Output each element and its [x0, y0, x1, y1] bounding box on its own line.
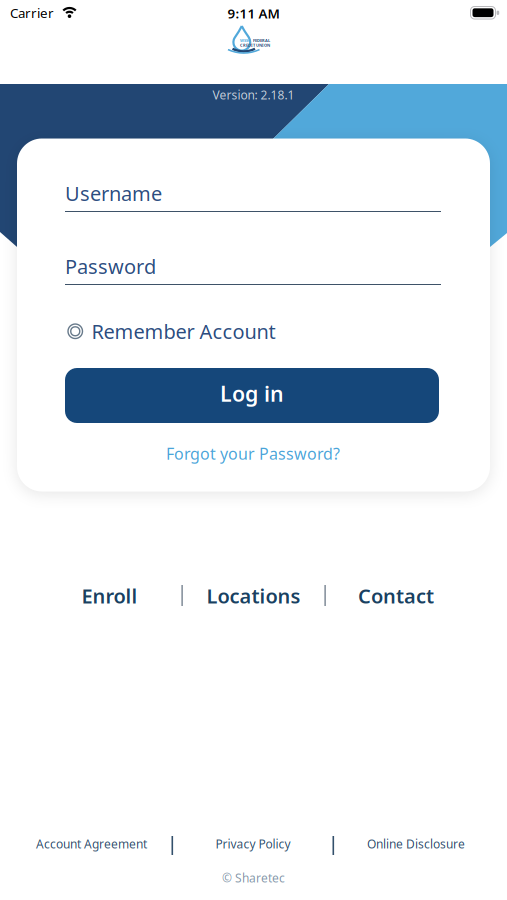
button[interactable]: Account Agreement [36, 836, 147, 852]
staticText: Password [65, 253, 156, 280]
staticText: © Sharetec [222, 870, 285, 886]
staticText: WSSC [240, 38, 251, 43]
staticText: Account Agreement [36, 836, 147, 852]
button[interactable]: Forgot your Password? [166, 443, 340, 464]
button[interactable]: Locations [206, 582, 300, 609]
staticText: FEDERAL [253, 38, 270, 43]
staticText: Locations [206, 582, 300, 609]
button[interactable]: Contact [358, 582, 434, 609]
button[interactable]: Online Disclosure [367, 836, 465, 852]
staticText: Carrier [10, 4, 54, 22]
button[interactable]: Username [65, 183, 441, 212]
staticText: Privacy Policy [215, 836, 290, 852]
staticText: Contact [358, 582, 434, 609]
staticText: CREDIT UNION [240, 43, 270, 48]
staticText: 9:11 AM [227, 4, 279, 22]
button[interactable]: Log in [65, 368, 439, 423]
staticText: Enroll [81, 582, 137, 609]
button[interactable]: Password [65, 256, 441, 285]
staticText: Online Disclosure [367, 836, 465, 852]
staticText: Username [65, 180, 162, 207]
button[interactable]: Privacy Policy [215, 836, 290, 852]
staticText: Version: 2.18.1 [212, 87, 294, 103]
button[interactable]: Remember Account [68, 318, 275, 345]
button[interactable]: Enroll [81, 582, 137, 609]
staticText: Remember Account [91, 318, 275, 345]
staticText: Forgot your Password? [166, 443, 340, 464]
staticText: Log in [220, 379, 284, 408]
